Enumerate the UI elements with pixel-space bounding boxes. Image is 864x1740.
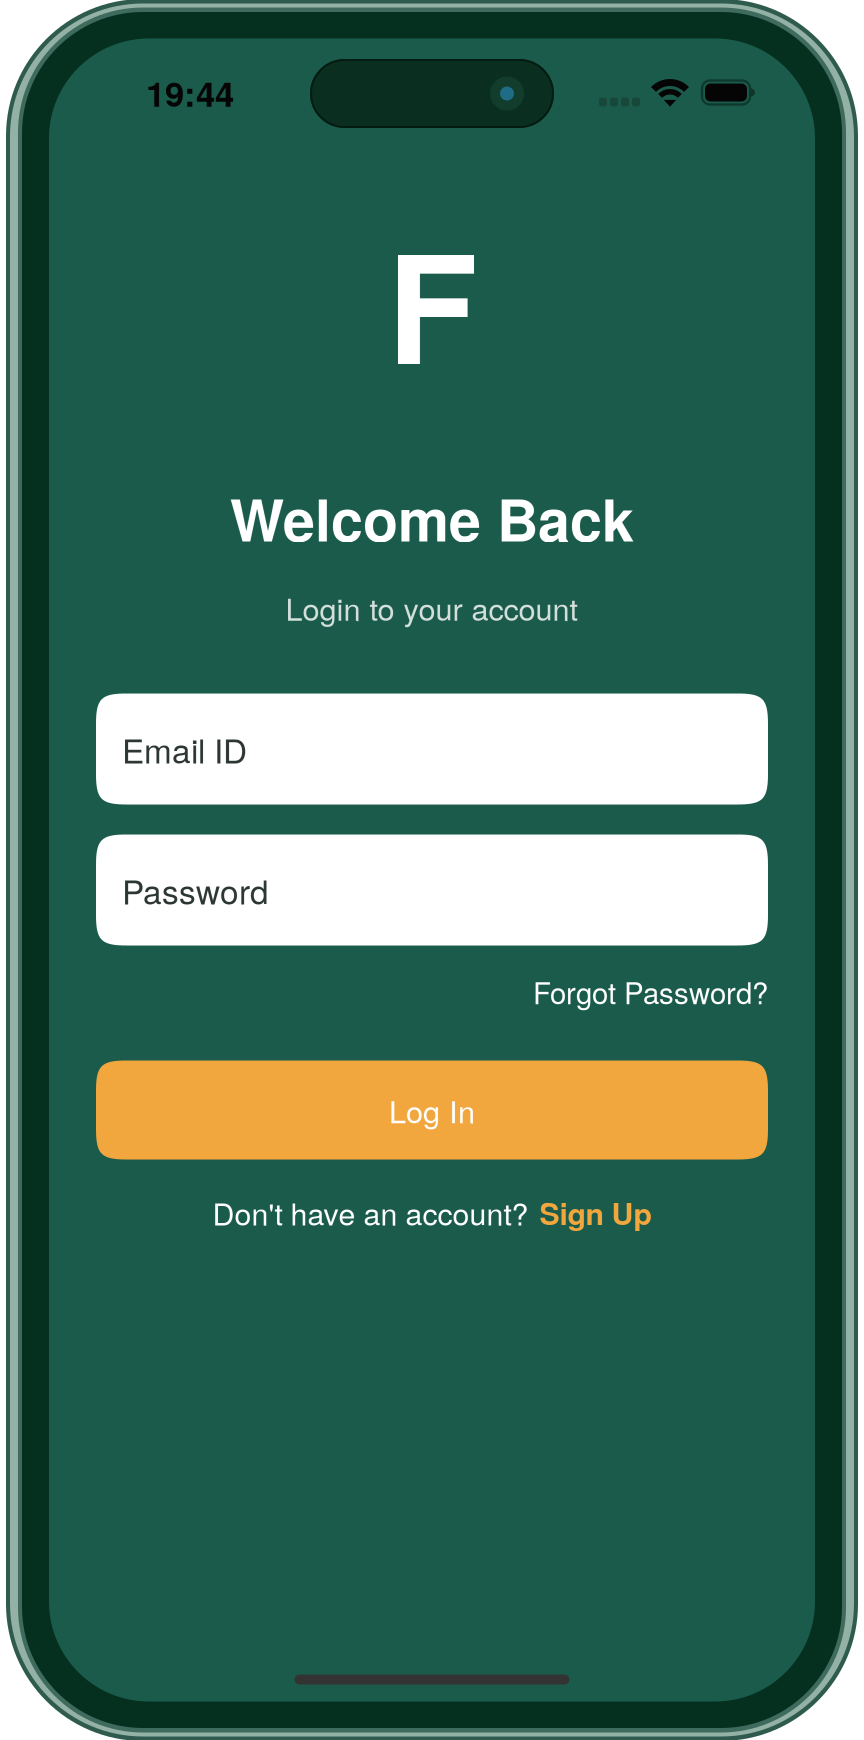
button[interactable]: Sign Up xyxy=(528,1191,651,1234)
staticText: Log In xyxy=(389,1088,475,1132)
staticText: Welcome Back xyxy=(230,477,634,559)
staticText: Password xyxy=(122,866,269,914)
staticText: 19:44 xyxy=(146,68,234,117)
staticText: Sign Up xyxy=(539,1191,651,1234)
staticText: Login to your account xyxy=(285,585,578,629)
button[interactable]: Log In xyxy=(96,1060,768,1159)
button[interactable]: Forgot Password? xyxy=(533,970,768,1012)
staticText: F xyxy=(386,196,477,410)
staticText: Email ID xyxy=(122,725,247,773)
button[interactable]: Email ID xyxy=(96,693,768,804)
staticText: Don't have an account? xyxy=(212,1191,528,1234)
staticText: Forgot Password? xyxy=(533,970,768,1012)
button[interactable]: Password xyxy=(96,834,768,945)
